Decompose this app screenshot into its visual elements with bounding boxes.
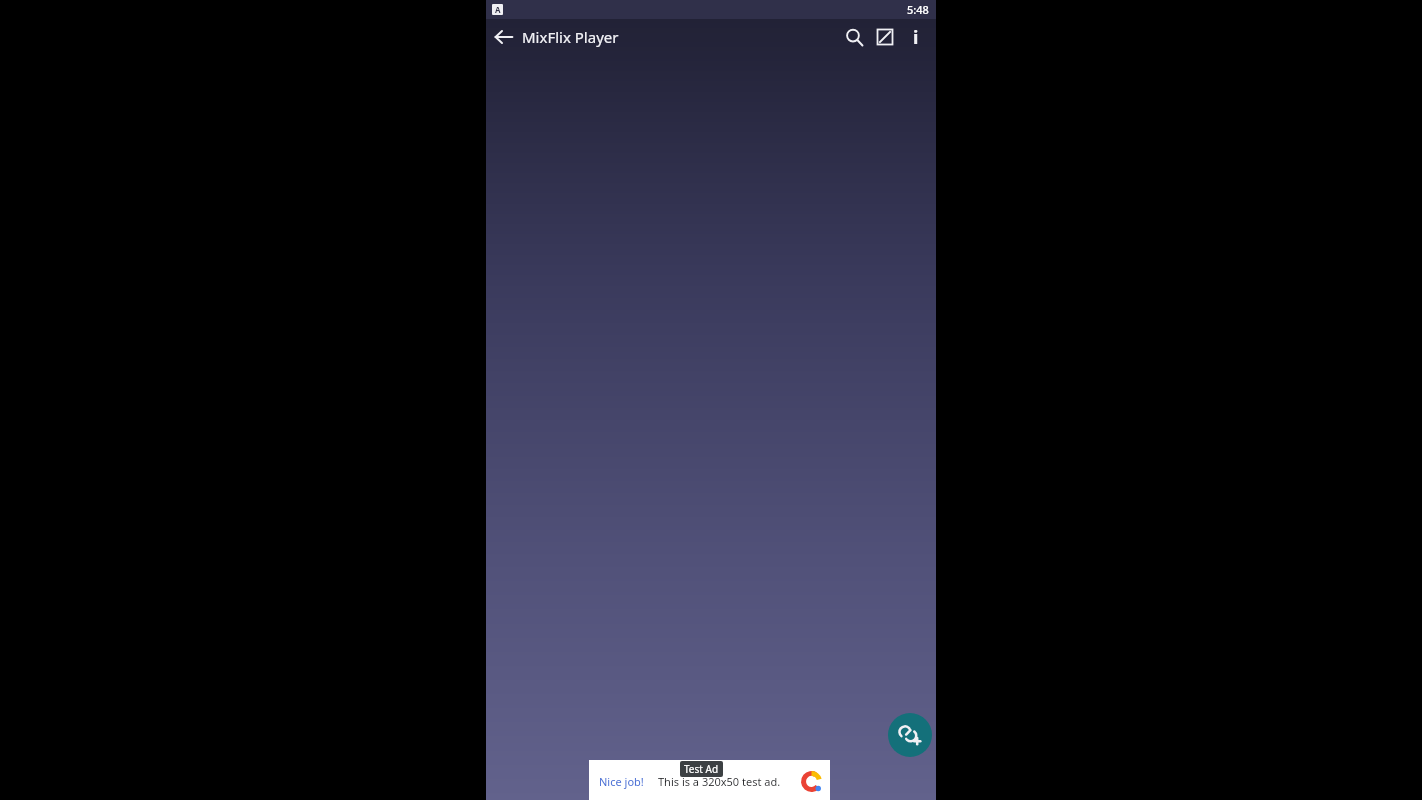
- button[interactable]: Add link: [888, 713, 932, 757]
- staticText: MixFlix Player: [522, 27, 619, 47]
- button[interactable]: Search: [839, 22, 869, 52]
- staticText: A: [495, 4, 501, 15]
- staticText: Nice job!: [599, 774, 644, 789]
- button[interactable]: Toggle image: [870, 22, 900, 52]
- staticText: 5:48: [907, 2, 929, 17]
- staticText: This is a 320x50 test ad.: [658, 774, 781, 789]
- staticText: i: [913, 25, 919, 50]
- staticText: Test Ad: [684, 762, 719, 776]
- button[interactable]: Back: [486, 19, 522, 55]
- button[interactable]: Nice job!: [589, 760, 830, 800]
- button[interactable]: Info: [901, 22, 931, 52]
